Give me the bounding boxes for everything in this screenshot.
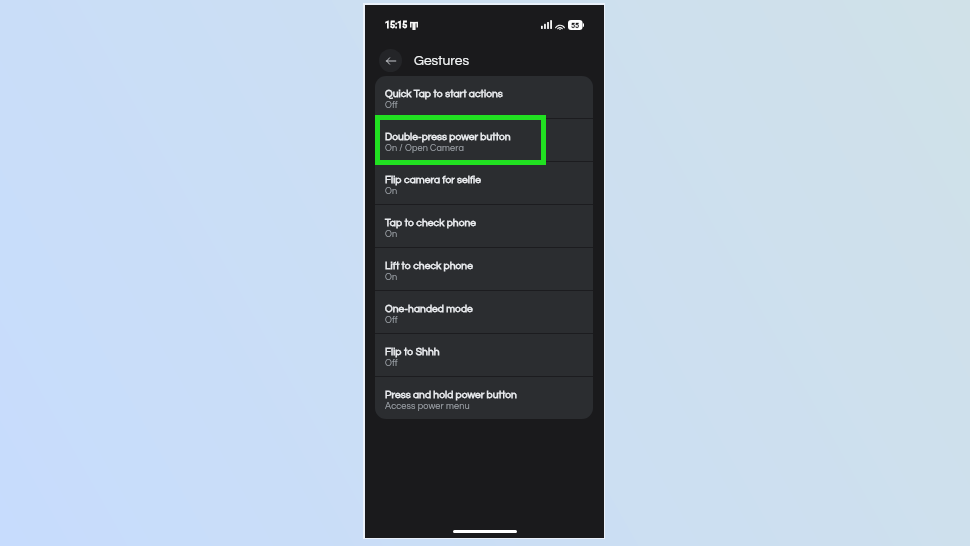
staticText: On	[385, 230, 398, 239]
button[interactable]: Double-press power button	[375, 119, 593, 161]
button[interactable]: Lift to check phone	[375, 248, 593, 290]
staticText: Flip camera for selfie	[385, 175, 482, 186]
staticText: 15:15	[385, 20, 408, 30]
staticText: Off	[385, 359, 398, 368]
staticText: Double-press power button	[385, 132, 511, 143]
button[interactable]: Flip to Shhh	[375, 334, 593, 376]
button[interactable]: Flip camera for selfie	[375, 162, 593, 204]
staticText: One-handed mode	[385, 304, 473, 315]
staticText: Off	[385, 101, 398, 110]
button[interactable]: Quick Tap to start actions	[375, 76, 593, 118]
staticText: Access power menu	[385, 402, 470, 411]
staticText: On / Open Camera	[385, 144, 465, 153]
staticText: On	[385, 273, 398, 282]
staticText: Lift to check phone	[385, 261, 473, 272]
staticText: 55	[571, 21, 580, 29]
button[interactable]: Back	[379, 49, 402, 72]
staticText: On	[385, 187, 398, 196]
staticText: Off	[385, 316, 398, 325]
staticText: Flip to Shhh	[385, 347, 440, 358]
staticText: Gestures	[414, 54, 470, 68]
button[interactable]: Tap to check phone	[375, 205, 593, 247]
staticText: Quick Tap to start actions	[385, 89, 503, 100]
button[interactable]: Press and hold power button	[375, 377, 593, 419]
staticText: Tap to check phone	[385, 218, 477, 229]
staticText: Press and hold power button	[385, 390, 517, 401]
button[interactable]: One-handed mode	[375, 291, 593, 333]
